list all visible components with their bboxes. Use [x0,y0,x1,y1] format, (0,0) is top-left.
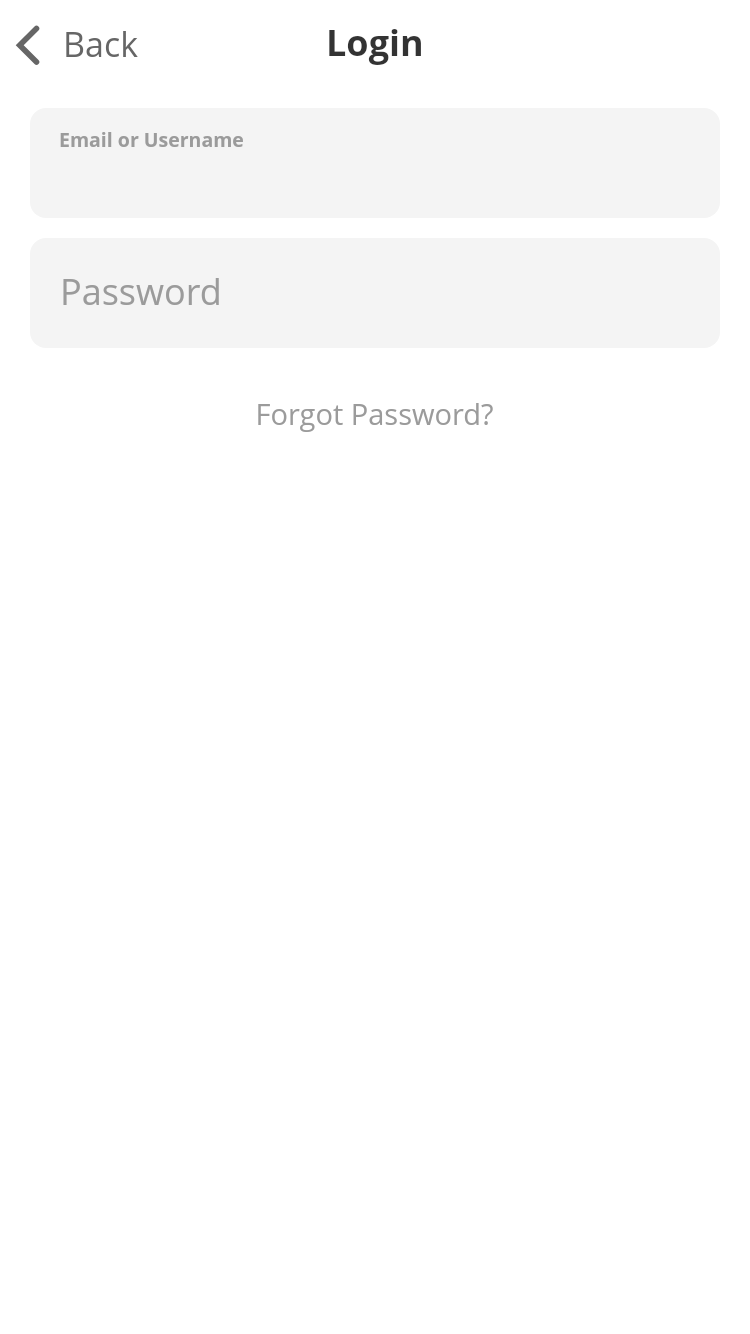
staticText: Password [60,267,222,316]
other: Back [12,20,42,68]
button[interactable]: Password [30,238,720,348]
button[interactable]: Forgot Password? [239,386,510,441]
staticText: Back [63,21,138,67]
button[interactable]: Back [0,0,156,88]
staticText: Email or Username [59,126,244,153]
staticText: Login [326,18,424,67]
button[interactable]: Email or Username [30,108,720,218]
